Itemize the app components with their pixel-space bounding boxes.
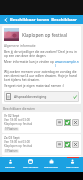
staticText: Klaplopen op festival: [22, 32, 67, 38]
staticText: Organisaties: [44, 165, 59, 168]
staticText: Van 18:00 tot 03:00: [4, 118, 30, 122]
button[interactable]: Back: [0, 15, 83, 24]
staticText: 3 Plaatsen: [5, 149, 18, 153]
staticText: Klaplopen op festival: [4, 122, 33, 126]
button[interactable]: Vr 02 Sept: [2, 112, 81, 133]
staticText: Afspraakbevestiging: [14, 94, 73, 99]
staticText: Vr 02 Sept: [4, 114, 20, 118]
button[interactable]: Decline: [72, 141, 79, 148]
staticText: Mijn profiel: [66, 165, 79, 168]
button[interactable]: www.example.nl: [55, 60, 79, 68]
staticText: Vergeet niet je eigen materiaal nemen :): [4, 84, 64, 88]
staticText: Klaplopen op festival: [4, 144, 33, 148]
staticText: Wij zoeken mensen voor zaterdag en zonda…: [4, 70, 79, 82]
staticText: Algemene informatie: [4, 44, 36, 48]
button[interactable]: Accept: [64, 141, 71, 148]
staticText: Diensten: [5, 165, 16, 168]
staticText: Ben jij de vrijwilliger die we zoeken? D…: [4, 50, 79, 58]
button[interactable]: Accept: [64, 119, 71, 126]
button[interactable]: Organisaties: [41, 157, 62, 172]
staticText: Beschikbare diensten: [3, 107, 36, 111]
staticText: Za 03 Sept: [4, 136, 20, 140]
button[interactable]: Klaplopen op festival: [2, 26, 81, 104]
button[interactable]: Info: [56, 119, 63, 126]
staticText: Van 18:00 tot 03:00: [4, 140, 30, 144]
button[interactable]: Mijn diensten: [20, 157, 41, 172]
button[interactable]: Decline: [72, 119, 79, 126]
button[interactable]: Diensten: [0, 157, 20, 172]
button[interactable]: Afspraakbevestiging: [4, 91, 79, 102]
staticText: Mijn diensten: [23, 165, 39, 168]
other: Downloaded: [73, 95, 77, 99]
button[interactable]: Info: [56, 141, 63, 148]
button[interactable]: Back: [2, 16, 9, 23]
staticText: 9 Plaatsen: [5, 127, 18, 131]
button[interactable]: Za 03 Sept: [2, 134, 81, 155]
staticText: Beschikbaar tonen Beschikbaar kies: [10, 17, 81, 23]
button[interactable]: Mijn profiel: [62, 157, 83, 172]
staticText: Meer informatie kun je vinden op: [4, 60, 55, 64]
